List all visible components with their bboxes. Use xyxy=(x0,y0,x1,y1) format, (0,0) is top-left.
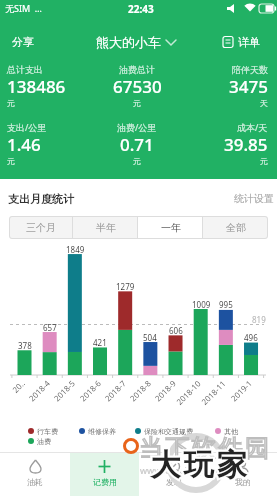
staticText: 详单 xyxy=(238,35,260,49)
staticText: 2019-1 xyxy=(228,377,254,403)
staticText: 496 xyxy=(244,332,258,343)
staticText: 总计支出 xyxy=(7,64,43,75)
button[interactable]: 我的 xyxy=(208,452,277,496)
staticText: 421 xyxy=(93,337,107,348)
button[interactable]: 全部 xyxy=(203,216,268,239)
staticText: 统计设置 xyxy=(234,192,274,205)
staticText: 657 xyxy=(43,322,57,333)
staticText: 1279 xyxy=(116,281,135,292)
staticText: 元 xyxy=(133,98,141,108)
staticText: 油费/公里 xyxy=(117,121,157,133)
staticText: 发现 xyxy=(166,477,182,487)
staticText: 陪伴天数 xyxy=(232,64,268,75)
staticText: 三个月 xyxy=(26,221,56,234)
staticText: 天 xyxy=(260,98,268,108)
staticText: 606 xyxy=(169,325,183,336)
button[interactable]: 油耗 xyxy=(0,452,70,496)
staticText: 2018-7 xyxy=(102,377,128,403)
staticText: 我的 xyxy=(235,477,251,487)
button[interactable]: 发现 xyxy=(139,452,208,496)
staticText: 成本/天 xyxy=(237,121,268,133)
staticText: 记费用 xyxy=(93,477,117,487)
button[interactable]: 分享 xyxy=(0,30,45,54)
button[interactable]: 三个月 xyxy=(9,216,73,239)
staticText: 保险和交通规费 xyxy=(144,427,193,436)
staticText: 2018-11 xyxy=(199,377,228,407)
staticText: 维修保养 xyxy=(88,427,116,436)
staticText: 其他 xyxy=(224,427,238,436)
staticText: 0.71 xyxy=(120,133,154,156)
staticText: 39.85 xyxy=(224,133,268,156)
staticText: 504 xyxy=(143,332,157,343)
staticText: 一年 xyxy=(161,221,181,234)
staticText: 819 xyxy=(252,314,266,325)
button[interactable]: 记费用 xyxy=(70,452,139,496)
staticText: 67530 xyxy=(113,75,162,98)
staticText: 20.. xyxy=(10,377,27,395)
staticText: 995 xyxy=(219,299,233,310)
staticText: 油耗 xyxy=(27,477,43,487)
staticText: 1.46 xyxy=(7,133,41,156)
staticText: 3475 xyxy=(229,75,268,98)
staticText: 油费总计 xyxy=(119,64,155,75)
staticText: 22:43 xyxy=(128,2,154,16)
button[interactable]: 一年 xyxy=(138,216,203,239)
staticText: 2018-8 xyxy=(127,377,153,403)
staticText: 1009 xyxy=(192,299,211,310)
staticText: 无SIM … xyxy=(5,2,42,14)
staticText: 大玩家 xyxy=(149,446,248,484)
staticText: 元 xyxy=(7,156,15,166)
button[interactable]: 熊大的小车 xyxy=(96,30,176,54)
staticText: 2018-6 xyxy=(77,377,103,403)
staticText: 行车费 xyxy=(37,427,58,436)
staticText: 元 xyxy=(133,156,141,166)
staticText: 支出/公里 xyxy=(7,121,47,133)
staticText: 全部 xyxy=(226,221,246,234)
staticText: 378 xyxy=(18,340,32,351)
staticText: 138486 xyxy=(7,75,66,98)
staticText: 大玩家 xyxy=(149,446,248,484)
staticText: 支出月度统计 xyxy=(8,192,74,206)
staticText: 元 xyxy=(7,98,15,108)
staticText: 1849 xyxy=(66,244,85,255)
staticText: 2018-5 xyxy=(51,377,77,403)
button[interactable]: 详单 xyxy=(222,30,260,54)
button[interactable]: 统计设置 xyxy=(226,190,274,206)
staticText: 油费 xyxy=(37,437,51,446)
staticText: 2018-9 xyxy=(152,377,178,403)
staticText: 分享 xyxy=(12,35,34,49)
staticText: 半年 xyxy=(96,221,116,234)
staticText: 熊大的小车 xyxy=(96,34,161,50)
staticText: 元 xyxy=(260,156,268,166)
staticText: 2018-10 xyxy=(174,377,203,407)
staticText: www.xiazaizhijia.com xyxy=(140,464,230,476)
staticText: 当下软件园 xyxy=(139,433,272,463)
button[interactable]: 半年 xyxy=(73,216,138,239)
staticText: 2018-4 xyxy=(26,377,52,403)
